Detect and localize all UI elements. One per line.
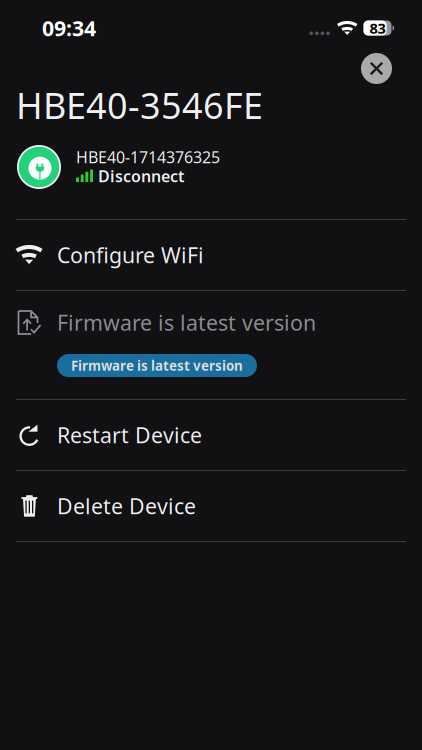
staticText: Firmware is latest version: [71, 357, 243, 374]
staticText: 09:34: [42, 14, 96, 42]
button[interactable]: Close: [361, 53, 392, 84]
staticText: HBE40-1714376325: [76, 146, 220, 168]
button[interactable]: Firmware is latest version: [0, 291, 422, 399]
staticText: Disconnect: [98, 165, 184, 187]
staticText: 83: [369, 18, 385, 38]
button[interactable]: Configure WiFi: [0, 220, 422, 290]
staticText: Delete Device: [57, 492, 196, 520]
staticText: HBE40-3546FE: [16, 81, 263, 129]
staticText: Configure WiFi: [57, 241, 204, 269]
button[interactable]: Delete Device: [0, 471, 422, 541]
staticText: Firmware is latest version: [57, 308, 316, 337]
staticText: Restart Device: [57, 421, 202, 449]
button[interactable]: Restart Device: [0, 400, 422, 470]
